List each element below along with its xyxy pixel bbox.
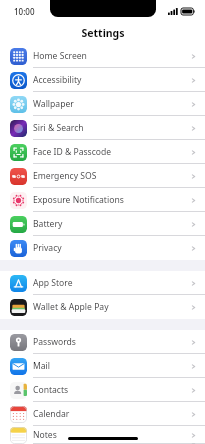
staticText: App Store xyxy=(33,277,190,289)
staticText: Settings xyxy=(81,26,125,40)
staticText: Notes xyxy=(33,429,190,441)
button[interactable]: Notes xyxy=(0,426,205,444)
staticText: Wallet & Apple Pay xyxy=(33,301,190,313)
staticText: 10:00 xyxy=(14,6,35,17)
button[interactable]: Battery xyxy=(0,212,205,236)
staticText: Battery xyxy=(33,218,190,230)
button[interactable]: Contacts xyxy=(0,378,205,402)
button[interactable]: Calendar xyxy=(0,402,205,426)
staticText: Siri & Search xyxy=(33,122,190,134)
staticText: Exposure Notifications xyxy=(33,194,190,206)
staticText: Calendar xyxy=(33,408,190,420)
staticText: Face ID & Passcode xyxy=(33,146,190,158)
staticText: Contacts xyxy=(33,384,190,396)
staticText: Emergency SOS xyxy=(33,170,190,182)
button[interactable]: Passwords xyxy=(0,330,205,354)
button[interactable]: Wallet & Apple Pay xyxy=(0,295,205,319)
button[interactable]: Accessibility xyxy=(0,68,205,92)
button[interactable]: App Store xyxy=(0,271,205,295)
staticText: Wallpaper xyxy=(33,98,190,110)
button[interactable]: Exposure Notifications xyxy=(0,188,205,212)
staticText: Home Screen xyxy=(33,50,190,62)
button[interactable]: Home Screen xyxy=(0,44,205,68)
button[interactable]: Emergency SOS xyxy=(0,164,205,188)
button[interactable]: Privacy xyxy=(0,236,205,260)
staticText: Mail xyxy=(33,360,190,372)
staticText: Accessibility xyxy=(33,74,190,86)
button[interactable]: Face ID & Passcode xyxy=(0,140,205,164)
button[interactable]: Mail xyxy=(0,354,205,378)
button[interactable]: Siri & Search xyxy=(0,116,205,140)
staticText: Privacy xyxy=(33,242,190,254)
staticText: Passwords xyxy=(33,336,190,348)
button[interactable]: Wallpaper xyxy=(0,92,205,116)
